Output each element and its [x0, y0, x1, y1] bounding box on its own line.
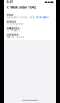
button[interactable]: view asset [35, 16, 48, 18]
staticText: Status [7, 21, 16, 23]
staticText: Replace cond. seal [7, 16, 35, 18]
staticText: In progress [7, 23, 23, 25]
button[interactable]: Back [7, 5, 9, 9]
staticText: Work order 1042 [10, 6, 36, 9]
staticText: Assignee [7, 27, 20, 29]
staticText: D. Alvarez [7, 29, 20, 31]
staticText: view asset [35, 16, 48, 18]
staticText: Title [7, 14, 14, 16]
staticText: 9:41 [7, 1, 13, 4]
staticText: Created [7, 34, 19, 36]
staticText: Mar 12, 2024 [7, 36, 25, 38]
